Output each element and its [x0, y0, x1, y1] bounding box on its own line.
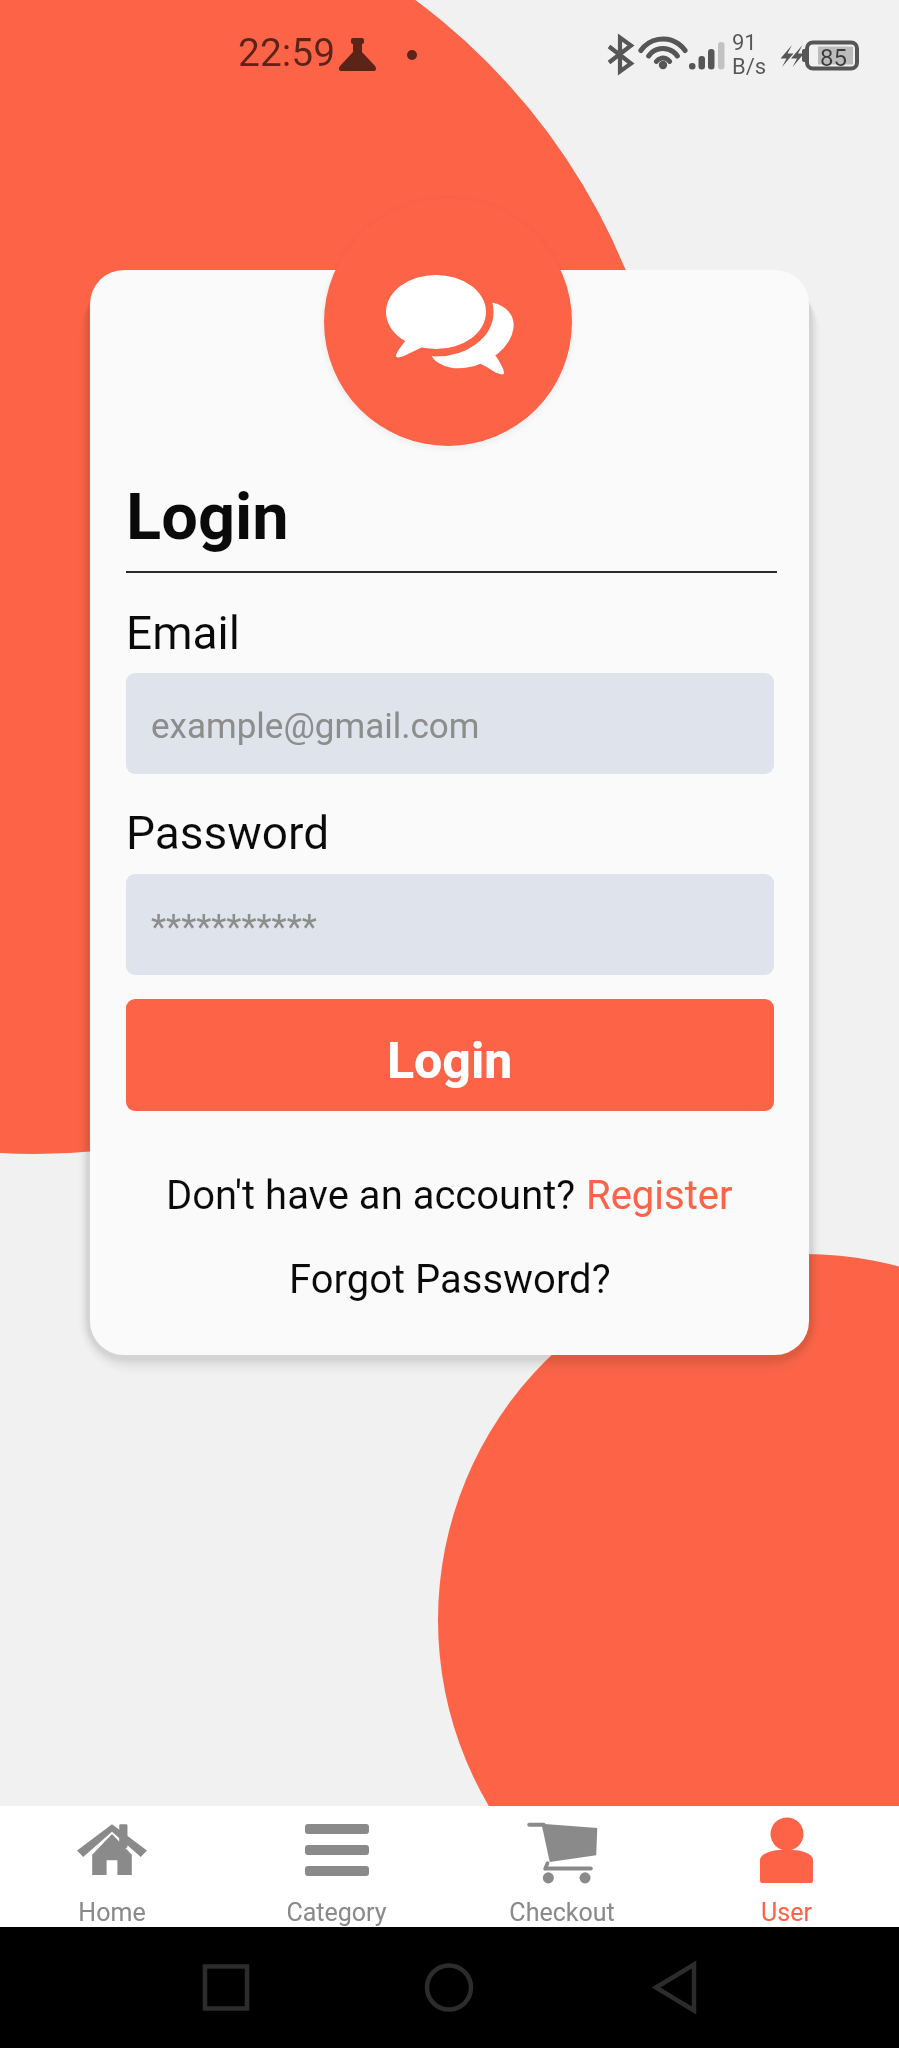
- button[interactable]: Login: [126, 999, 774, 1111]
- button[interactable]: example@gmail.com: [126, 673, 774, 774]
- button[interactable]: Home: [0, 1806, 224, 1927]
- staticText: Email: [126, 606, 240, 660]
- button[interactable]: ***********: [126, 874, 774, 975]
- button[interactable]: Checkout: [449, 1806, 674, 1927]
- button[interactable]: Recents: [166, 1927, 286, 2048]
- staticText: Don't have an account?: [166, 1172, 586, 1219]
- staticText: Login: [387, 1032, 513, 1091]
- staticText: B/s: [732, 54, 767, 80]
- staticText: Password: [126, 806, 330, 860]
- button[interactable]: Forgot Password?: [289, 1256, 611, 1303]
- staticText: Checkout: [509, 1898, 615, 1927]
- staticText: ***********: [151, 907, 317, 948]
- staticText: Login: [126, 479, 289, 555]
- staticText: User: [761, 1898, 812, 1927]
- other: Chat app logo: [324, 198, 572, 446]
- staticText: example@gmail.com: [151, 706, 480, 747]
- staticText: 22:59: [238, 30, 336, 76]
- button[interactable]: Back: [618, 1927, 738, 2048]
- button[interactable]: User: [674, 1806, 899, 1927]
- staticText: Category: [286, 1898, 387, 1927]
- staticText: 91: [732, 30, 757, 56]
- staticText: 85: [820, 44, 847, 72]
- staticText: Home: [78, 1898, 146, 1927]
- staticText: Register: [586, 1172, 733, 1219]
- button[interactable]: Category: [224, 1806, 449, 1927]
- button[interactable]: Register: [586, 1172, 733, 1219]
- button[interactable]: Home: [389, 1927, 509, 2048]
- staticText: Forgot Password?: [289, 1256, 611, 1303]
